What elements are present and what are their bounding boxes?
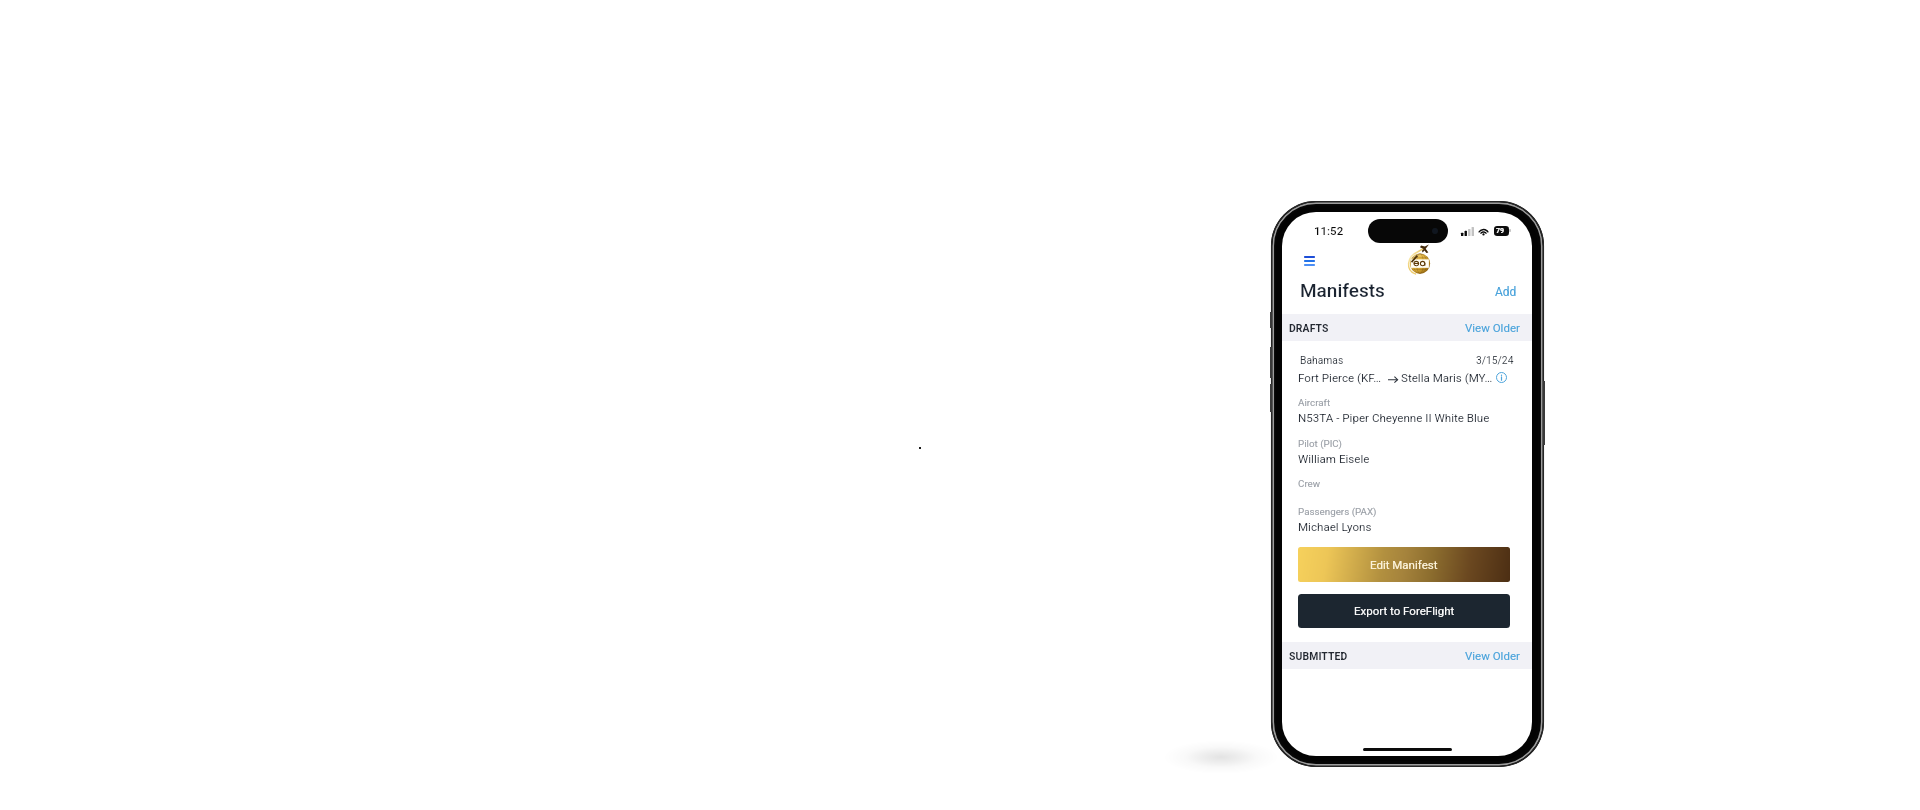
button[interactable]: Add: [1490, 282, 1522, 302]
staticText: William Eisele: [1298, 452, 1370, 466]
button[interactable]: View Older: [1459, 645, 1526, 666]
button[interactable]: Export to ForeFlight: [1298, 594, 1510, 628]
staticText: Add: [1495, 285, 1517, 299]
staticText: N53TA - Piper Cheyenne II White Blue: [1298, 411, 1490, 425]
staticText: DRAFTS: [1289, 322, 1329, 334]
staticText: Passengers (PAX): [1298, 506, 1377, 517]
staticText: Pilot (PIC): [1298, 438, 1343, 449]
staticText: Edit Manifest: [1370, 558, 1438, 571]
staticText: Manifests: [1300, 279, 1385, 301]
staticText: Crew: [1298, 478, 1321, 489]
button[interactable]: Elite Aviation home: [1406, 243, 1434, 275]
staticText: View Older: [1465, 649, 1520, 662]
staticText: Michael Lyons: [1298, 520, 1372, 534]
button[interactable]: Edit Manifest: [1298, 547, 1510, 582]
staticText: Export to ForeFlight: [1354, 604, 1455, 617]
staticText: 79: [1496, 227, 1505, 235]
staticText: View Older: [1465, 321, 1520, 334]
staticText: Stella Maris (MY…: [1401, 371, 1493, 385]
staticText: Aircraft: [1298, 397, 1331, 408]
button[interactable]: Open navigation menu: [1298, 251, 1320, 271]
button[interactable]: View Older: [1459, 317, 1526, 338]
staticText: Fort Pierce (KF…: [1298, 371, 1382, 385]
button[interactable]: Flight details: [1495, 371, 1508, 384]
staticText: 3/15/24: [1476, 354, 1514, 366]
button[interactable]: [1282, 349, 1532, 387]
staticText: 11:52: [1314, 224, 1344, 237]
staticText: SUBMITTED: [1289, 650, 1348, 662]
staticText: Bahamas: [1300, 354, 1344, 366]
